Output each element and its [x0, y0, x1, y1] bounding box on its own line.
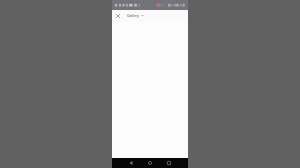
button[interactable]: Gallery — [127, 13, 144, 18]
button[interactable]: Recent apps — [163, 158, 175, 168]
staticText: Gallery — [127, 13, 139, 18]
button[interactable]: Home — [144, 158, 156, 168]
button[interactable]: Close — [113, 11, 122, 20]
button[interactable]: Back — [125, 158, 137, 168]
